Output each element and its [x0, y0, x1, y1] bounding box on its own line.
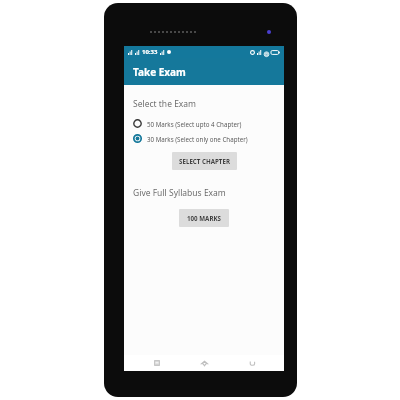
staticText: Select the Exam — [133, 98, 197, 110]
button[interactable]: SELECT CHAPTER — [172, 152, 237, 170]
button[interactable]: 50 Marks (Select upto 4 Chapter) — [133, 119, 275, 128]
staticText: Give Full Syllabus Exam — [133, 187, 226, 199]
button[interactable]: Back — [237, 355, 267, 371]
staticText: SELECT CHAPTER — [179, 157, 230, 165]
staticText: 100 MARKS — [187, 214, 221, 222]
button[interactable]: Recent apps — [142, 355, 172, 371]
button[interactable]: 30 Marks (Select only one Chapter) — [133, 134, 275, 143]
staticText: 30 Marks (Select only one Chapter) — [147, 135, 248, 143]
button[interactable]: Home — [189, 355, 219, 371]
staticText: Take Exam — [133, 65, 186, 79]
staticText: 10:33 — [142, 48, 158, 56]
staticText: 50 Marks (Select upto 4 Chapter) — [147, 120, 242, 128]
button[interactable]: 100 MARKS — [179, 209, 229, 227]
